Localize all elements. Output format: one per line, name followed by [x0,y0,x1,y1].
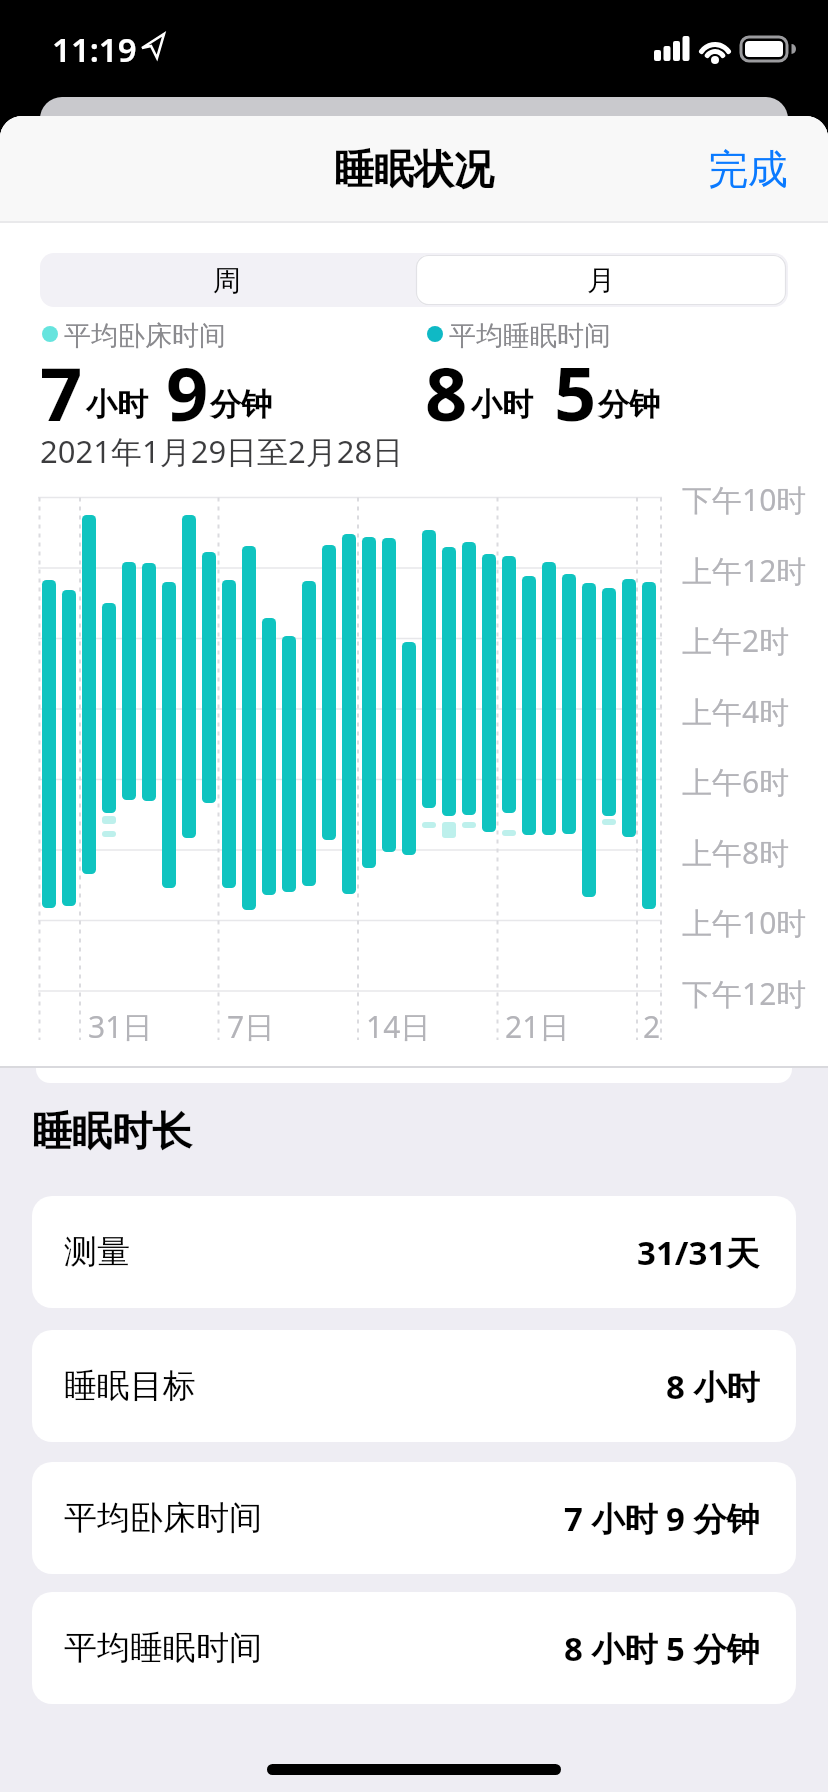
staticText: 2021年1月29日至2月28日 [40,430,404,472]
staticText: 7 小时 9 分钟 [564,1496,760,1541]
staticText: 小时 [86,385,148,424]
button[interactable]: 测量 [32,1196,796,1308]
staticText: 平均睡眠时间 [64,1627,262,1669]
staticText: 上午2时 [682,620,790,661]
staticText: 上午4时 [682,691,790,732]
staticText: 7 [40,342,83,443]
staticText: 上午8时 [682,832,790,873]
staticText: 分钟 [210,385,272,424]
staticText: 月 [587,263,615,298]
staticText: 9 [166,342,209,443]
staticText: 2 [643,1006,661,1047]
staticText: 7日 [227,1006,275,1047]
staticText: 平均睡眠时间 [449,319,611,353]
staticText: 8 小时 5 分钟 [564,1626,760,1671]
staticText: 分钟 [598,385,660,424]
staticText: 上午10时 [682,902,807,943]
button[interactable]: 平均卧床时间 [32,1462,796,1574]
staticText: 31日 [88,1006,153,1047]
staticText: 测量 [64,1231,130,1273]
button[interactable]: 完成 [708,144,788,194]
staticText: 睡眠状况 [334,144,494,194]
button[interactable]: 平均睡眠时间 [32,1592,796,1704]
staticText: 8 [425,342,468,443]
staticText: 31/31天 [637,1230,760,1275]
staticText: 下午10时 [682,479,807,520]
staticText: 睡眠目标 [64,1365,196,1407]
staticText: 上午12时 [682,550,807,591]
staticText: 上午6时 [682,761,790,802]
staticText: 14日 [366,1006,431,1047]
staticText: 11:19 [52,27,137,72]
button[interactable]: 周 [40,253,414,307]
staticText: 8 小时 [666,1364,760,1409]
button[interactable]: 睡眠目标 [32,1330,796,1442]
staticText: 平均卧床时间 [64,319,226,353]
staticText: 5 [554,342,597,443]
staticText: 21日 [505,1006,570,1047]
staticText: 下午12时 [682,973,807,1014]
staticText: 周 [213,263,241,298]
staticText: 睡眠时长 [32,1106,192,1156]
staticText: 平均卧床时间 [64,1497,262,1539]
button[interactable]: 月 [416,255,786,305]
staticText: 小时 [471,385,533,424]
